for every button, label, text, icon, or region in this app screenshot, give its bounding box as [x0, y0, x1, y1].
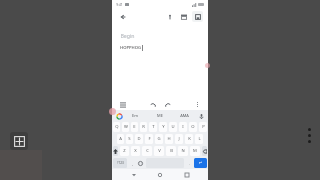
button[interactable]: Save [192, 11, 203, 22]
staticText: Y [162, 124, 165, 130]
button[interactable]: Z [120, 146, 129, 156]
staticText: X [134, 148, 137, 154]
staticText: E [133, 124, 136, 130]
button[interactable]: O [189, 122, 197, 132]
button[interactable]: More options [303, 128, 315, 143]
button[interactable]: Redo [163, 100, 172, 109]
button[interactable]: Back [117, 11, 128, 22]
staticText: L [198, 136, 201, 142]
staticText: Begin [120, 32, 135, 39]
button[interactable]: ?123 [113, 158, 127, 168]
staticText: Q [115, 124, 119, 130]
staticText: M [193, 148, 197, 154]
staticText: R [142, 124, 145, 130]
button[interactable]: Emoji [137, 158, 144, 168]
button[interactable]: A [117, 134, 124, 144]
button[interactable]: Backspace [202, 146, 207, 156]
button[interactable]: P [199, 122, 207, 132]
button[interactable]: B [166, 146, 176, 156]
staticText: W [124, 124, 128, 130]
staticText: C [146, 148, 149, 154]
button[interactable]: V [154, 146, 164, 156]
button[interactable]: Undo [148, 100, 157, 109]
staticText: 9:41 [116, 3, 123, 7]
staticText: G [157, 136, 161, 142]
button[interactable]: H [165, 134, 173, 144]
staticText: AMA [180, 113, 189, 118]
staticText: ME [157, 113, 163, 118]
staticText: ↵ [199, 161, 202, 165]
button[interactable]: Recents [182, 170, 192, 180]
button[interactable]: Home [155, 170, 165, 180]
button[interactable]: W [122, 122, 129, 132]
staticText: O [191, 124, 195, 130]
staticText: A [119, 136, 122, 142]
button[interactable]: More [193, 100, 202, 109]
button[interactable]: M [190, 146, 200, 156]
button[interactable]: D [135, 134, 143, 144]
button[interactable]: Google search [115, 112, 123, 120]
staticText: T [152, 124, 155, 130]
button[interactable]: R [140, 122, 147, 132]
staticText: , [132, 161, 133, 166]
staticText: K [188, 136, 191, 142]
button[interactable]: Attach [164, 11, 175, 22]
staticText: . [189, 161, 190, 166]
button[interactable]: K [185, 134, 193, 144]
staticText: N [181, 148, 185, 154]
staticText: S [128, 136, 131, 142]
staticText: U [171, 124, 175, 130]
staticText: ?123 [117, 161, 124, 165]
button[interactable]: L [195, 134, 203, 144]
button[interactable]: F [145, 134, 153, 144]
staticText: D [137, 136, 141, 142]
button[interactable]: Back [129, 170, 139, 180]
button[interactable]: Archive [178, 11, 189, 22]
button[interactable]: E [131, 122, 138, 132]
button[interactable]: U [169, 122, 177, 132]
button[interactable]: N [178, 146, 188, 156]
button[interactable]: Formatting [118, 100, 127, 109]
button[interactable]: Q [113, 122, 120, 132]
button[interactable]: Move overlay [10, 132, 28, 150]
button[interactable]: G [155, 134, 163, 144]
staticText: J [178, 136, 180, 142]
staticText: Em [132, 113, 138, 118]
button[interactable]: J [175, 134, 183, 144]
button[interactable]: I [179, 122, 187, 132]
staticText: H [167, 136, 171, 142]
staticText: Z [123, 148, 126, 154]
button[interactable]: Em [123, 110, 147, 121]
button[interactable]: C [142, 146, 152, 156]
button[interactable]: Voice input [197, 112, 205, 120]
button[interactable]: S [126, 134, 133, 144]
staticText: HOPPHOG [120, 45, 141, 51]
button[interactable]: ME [147, 110, 172, 121]
button[interactable]: Enter [194, 158, 207, 168]
button[interactable]: Shift [113, 146, 118, 156]
staticText: V [158, 148, 161, 154]
staticText: P [202, 124, 205, 130]
button[interactable]: X [131, 146, 140, 156]
button[interactable]: Y [159, 122, 167, 132]
staticText: B [170, 148, 173, 154]
button[interactable]: AMA [172, 110, 197, 121]
button[interactable]: T [149, 122, 157, 132]
staticText: F [148, 136, 151, 142]
button[interactable]: , [129, 158, 135, 168]
staticText: I [182, 124, 184, 130]
